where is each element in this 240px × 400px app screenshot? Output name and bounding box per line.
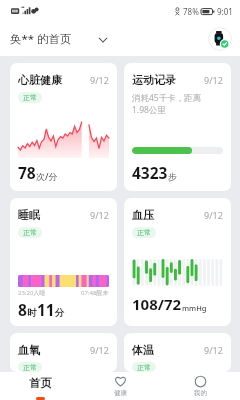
staticText: mmHg <box>182 303 207 313</box>
staticText: 正常 <box>23 93 37 102</box>
staticText: 9/12 <box>90 209 109 221</box>
staticText: 正常 <box>137 228 151 237</box>
staticText: 9/12 <box>90 344 109 356</box>
staticText: 首页 <box>29 376 52 390</box>
staticText: 体温 <box>132 343 154 357</box>
staticText: 正常 <box>23 228 37 237</box>
staticText: 正常 <box>23 363 37 372</box>
staticText: 睡眠 <box>18 208 40 222</box>
button[interactable]: 我的 <box>160 372 240 400</box>
button[interactable]: 睡眠 <box>10 198 117 326</box>
button[interactable]: 健康 <box>80 372 160 400</box>
staticText: 血氧 <box>18 343 40 357</box>
staticText: 9/12 <box>204 344 223 356</box>
button[interactable]: Connected watch <box>208 27 232 51</box>
staticText: 07:48醒来 <box>81 289 109 297</box>
button[interactable]: 心脏健康 <box>10 63 117 191</box>
button[interactable]: 血氧 <box>10 333 117 372</box>
staticText: 1.98公里 <box>132 104 166 116</box>
button[interactable]: 首页 <box>0 372 80 400</box>
staticText: 9/12 <box>204 74 223 86</box>
staticText: 正常 <box>137 363 151 372</box>
staticText: 血压 <box>132 208 154 222</box>
button[interactable]: 体温 <box>124 333 231 372</box>
staticText: 我的 <box>194 389 207 397</box>
staticText: 9/12 <box>204 209 223 221</box>
staticText: 次/分 <box>36 170 58 182</box>
button[interactable]: Switch profile <box>98 35 108 44</box>
staticText: 健康 <box>114 389 127 397</box>
staticText: 4323 <box>132 162 168 183</box>
staticText: 9/12 <box>90 74 109 86</box>
staticText: 9:01 <box>217 6 233 17</box>
staticText: 11 <box>37 299 55 320</box>
staticText: 8 <box>18 299 27 320</box>
button[interactable]: 运动记录 <box>124 63 231 191</box>
staticText: 78 <box>18 162 36 183</box>
staticText: 运动记录 <box>132 73 176 87</box>
staticText: 心脏健康 <box>18 73 62 87</box>
staticText: 时 <box>27 307 37 319</box>
staticText: 108/72 <box>132 294 182 314</box>
staticText: 奂** 的首页 <box>10 31 72 47</box>
staticText: 步 <box>168 171 177 182</box>
staticText: 消耗45千卡，距离 <box>132 92 202 104</box>
staticText: 23:20入睡 <box>18 289 46 297</box>
button[interactable]: 血压 <box>124 198 231 326</box>
staticText: 分 <box>55 307 65 319</box>
staticText: 78% <box>183 6 199 17</box>
